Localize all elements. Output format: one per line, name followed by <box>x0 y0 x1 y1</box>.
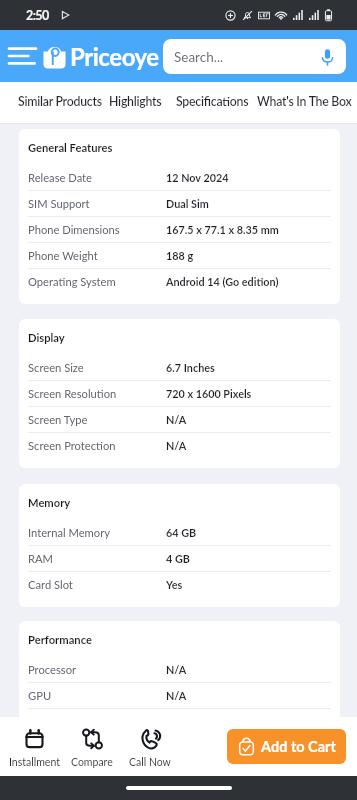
staticText: Phone Dimensions <box>28 223 166 236</box>
staticText: RAM <box>28 552 166 565</box>
staticText: Screen Type <box>28 413 166 426</box>
staticText: Search... <box>174 49 224 65</box>
staticText: 2:50 <box>26 8 49 23</box>
button[interactable]: Similar Products <box>18 82 102 124</box>
staticText: Yes <box>166 578 183 591</box>
button[interactable]: Add to Cart <box>227 729 346 764</box>
staticText: 188 g <box>166 249 194 262</box>
button[interactable]: Highlights <box>109 82 162 124</box>
staticText: Highlights <box>109 94 162 109</box>
button[interactable]: Menu <box>4 38 40 74</box>
staticText: N/A <box>166 413 187 426</box>
button[interactable]: Search... <box>163 39 346 74</box>
staticText: Compare <box>71 756 113 769</box>
staticText: N/A <box>166 663 187 676</box>
staticText: Performance <box>28 633 92 646</box>
button[interactable]: What's In The Box <box>257 82 352 124</box>
staticText: Operating System <box>28 275 166 288</box>
button[interactable]: Compare <box>63 717 121 776</box>
staticText: General Features <box>28 141 113 154</box>
button[interactable]: Installment <box>5 717 63 776</box>
staticText: 12 Nov 2024 <box>166 171 229 184</box>
staticText: Screen Size <box>28 361 166 374</box>
staticText: Internal Memory <box>28 526 166 539</box>
staticText: Display <box>28 331 65 344</box>
staticText: Priceoye <box>70 42 159 71</box>
staticText: 167.5 x 77.1 x 8.35 mm <box>166 223 279 236</box>
staticText: Phone Weight <box>28 249 166 262</box>
staticText: SIM Support <box>28 197 166 210</box>
button[interactable]: Call Now <box>121 717 179 776</box>
staticText: Installment <box>9 756 60 769</box>
staticText: Add to Cart <box>261 738 336 755</box>
staticText: N/A <box>166 689 187 702</box>
staticText: N/A <box>166 439 187 452</box>
button[interactable]: Priceoye <box>43 42 159 71</box>
staticText: GPU <box>28 689 166 702</box>
staticText: Card Slot <box>28 578 166 591</box>
staticText: Similar Products <box>18 94 102 109</box>
staticText: Specifications <box>176 94 249 109</box>
button[interactable]: Specifications <box>176 82 249 124</box>
staticText: Memory <box>28 496 71 509</box>
staticText: 6.7 Inches <box>166 361 215 374</box>
staticText: Dual Sim <box>166 197 209 210</box>
staticText: Android 14 (Go edition) <box>166 275 279 288</box>
staticText: Call Now <box>129 756 171 769</box>
staticText: 64 GB <box>166 526 197 539</box>
other: Voice search <box>317 47 337 67</box>
staticText: 720 x 1600 Pixels <box>166 387 252 400</box>
staticText: Screen Resolution <box>28 387 166 400</box>
staticText: Release Date <box>28 171 166 184</box>
staticText: What's In The Box <box>257 94 352 109</box>
staticText: 4 GB <box>166 552 190 565</box>
staticText: Processor <box>28 663 166 676</box>
staticText: Screen Protection <box>28 439 166 452</box>
